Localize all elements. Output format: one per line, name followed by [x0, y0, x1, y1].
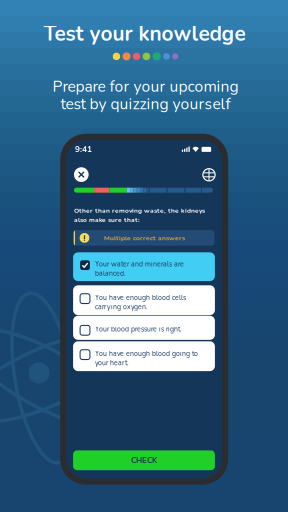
- staticText: Your water and minerals are balanced.: [95, 259, 184, 278]
- button[interactable]: CHECK: [73, 450, 215, 470]
- button[interactable]: You have enough blood going to your hear…: [73, 341, 215, 371]
- staticText: 9:41: [75, 144, 92, 155]
- staticText: Other than removing waste, the kidneys a…: [74, 206, 205, 224]
- staticText: Your blood pressure is right.: [95, 325, 182, 334]
- button[interactable]: Your blood pressure is right.: [73, 316, 215, 340]
- button[interactable]: You have enough blood cells carrying oxy…: [73, 285, 215, 315]
- button[interactable]: Change language: [198, 164, 220, 186]
- staticText: CHECK: [131, 455, 157, 466]
- button[interactable]: Close: [70, 164, 92, 186]
- staticText: test by quizzing yourself: [61, 94, 231, 115]
- staticText: Multiple correct answers: [104, 233, 185, 243]
- button[interactable]: Your water and minerals are balanced.: [73, 252, 215, 281]
- staticText: You have enough blood cells carrying oxy…: [95, 293, 186, 312]
- staticText: You have enough blood going to your hear…: [95, 349, 198, 368]
- staticText: Prepare for your upcoming: [53, 76, 239, 97]
- staticText: Test your knowledge: [44, 20, 246, 48]
